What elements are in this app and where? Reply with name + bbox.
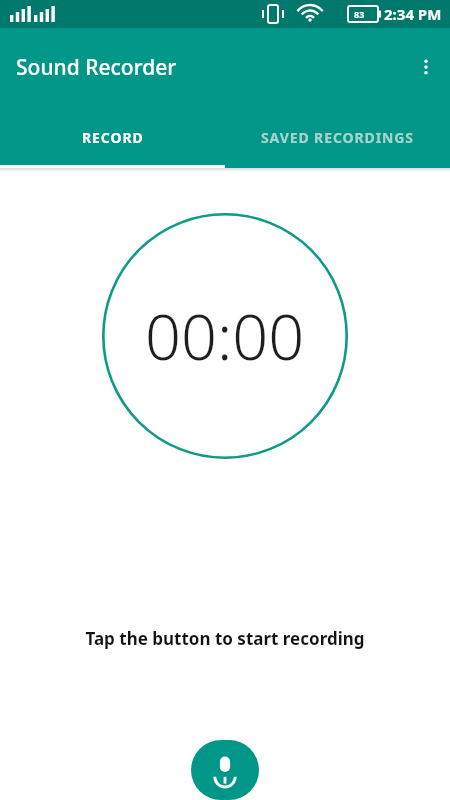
button[interactable]: RECORD [0,106,225,168]
staticText: 83 [354,8,365,20]
staticText: 00:00 [145,293,305,379]
button[interactable]: More options [402,43,450,91]
staticText: RECORD [82,128,144,147]
button[interactable]: SAVED RECORDINGS [225,106,450,168]
staticText: SAVED RECORDINGS [261,128,414,147]
staticText: 2:34 PM [384,4,442,24]
button[interactable]: Start recording [191,740,259,800]
staticText: Sound Recorder [16,53,177,82]
staticText: Tap the button to start recording [0,627,450,650]
